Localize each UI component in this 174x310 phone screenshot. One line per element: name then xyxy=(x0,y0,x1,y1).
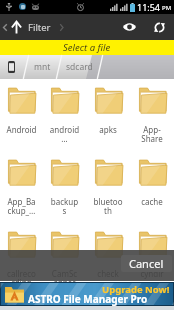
staticText: bluetoo th xyxy=(86,196,130,217)
staticText: cache xyxy=(130,196,174,207)
staticText: android … xyxy=(43,124,86,145)
button[interactable]: mnt xyxy=(29,55,56,79)
staticText: callreco rding xyxy=(0,268,43,289)
button[interactable]: callreco rding xyxy=(0,231,43,289)
staticText: ASTRO File Manager Pro xyxy=(28,292,148,306)
staticText: CamSc anner xyxy=(43,268,86,289)
button[interactable]: Refresh xyxy=(144,14,174,40)
button[interactable]: sdcard xyxy=(62,55,97,79)
staticText: check xyxy=(86,268,130,279)
button[interactable]: CamSc anner xyxy=(43,231,86,289)
button[interactable]: backup s xyxy=(43,159,86,217)
button[interactable]: Cancel xyxy=(121,255,172,272)
button[interactable]: Show hidden files xyxy=(115,14,144,40)
staticText: Upgrade Now! xyxy=(102,283,170,296)
staticText: sdcard xyxy=(66,61,93,73)
staticText: backup s xyxy=(43,196,86,217)
staticText: Filter xyxy=(28,21,51,34)
button[interactable]: Back xyxy=(0,14,68,40)
button[interactable]: Device root xyxy=(0,55,23,79)
staticText: Cancel xyxy=(129,256,164,271)
button[interactable]: android … xyxy=(43,87,86,145)
other: Back xyxy=(2,22,8,33)
staticText: apks xyxy=(86,124,130,135)
button[interactable]: bluetoo th xyxy=(86,159,130,217)
button[interactable]: App- Share xyxy=(130,87,174,145)
staticText: App- Share xyxy=(130,124,174,145)
staticText: App_Ba ckup_… xyxy=(0,196,43,217)
button[interactable]: App_Ba ckup_… xyxy=(0,159,43,217)
button[interactable]: check xyxy=(86,231,130,279)
staticText: mnt xyxy=(34,61,51,73)
staticText: PM xyxy=(162,4,172,12)
staticText: Select a file xyxy=(63,41,111,54)
button[interactable]: Android xyxy=(0,87,43,135)
staticText: Android xyxy=(0,124,43,135)
button[interactable]: cyndir xyxy=(130,231,174,279)
button[interactable]: apks xyxy=(86,87,130,135)
staticText: 11:54 xyxy=(137,1,161,13)
button[interactable]: ASTRO File Manager Pro xyxy=(0,282,174,306)
staticText: cyndir xyxy=(130,268,174,279)
button[interactable]: cache xyxy=(130,159,174,207)
